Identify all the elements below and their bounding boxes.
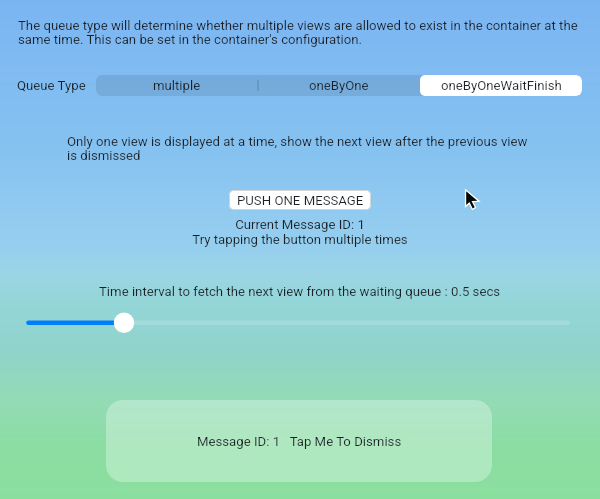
button[interactable]: Message ID: 1 Tap Me To Dismiss (106, 400, 492, 482)
staticText: multiple (153, 78, 201, 93)
staticText: The queue type will determine whether mu… (18, 18, 578, 47)
staticText: PUSH ONE MESSAGE (237, 193, 364, 208)
staticText: Time interval to fetch the next view fro… (99, 284, 501, 299)
button[interactable]: multiple (96, 75, 258, 96)
staticText: Queue Type (17, 78, 86, 93)
other: Pointer (462, 187, 482, 213)
button[interactable]: Time interval slider (14, 311, 586, 334)
staticText: Current Message ID: 1 (235, 217, 365, 232)
staticText: oneByOneWaitFinish (441, 78, 562, 93)
staticText: Try tapping the button multiple times (192, 232, 408, 247)
staticText: oneByOne (309, 78, 369, 93)
button[interactable]: PUSH ONE MESSAGE (229, 190, 371, 210)
button[interactable]: oneByOneWaitFinish (420, 75, 582, 96)
button[interactable]: oneByOne (258, 75, 420, 96)
staticText: Message ID: 1 Tap Me To Dismiss (197, 434, 402, 449)
staticText: Only one view is displayed at a time, sh… (67, 134, 528, 163)
